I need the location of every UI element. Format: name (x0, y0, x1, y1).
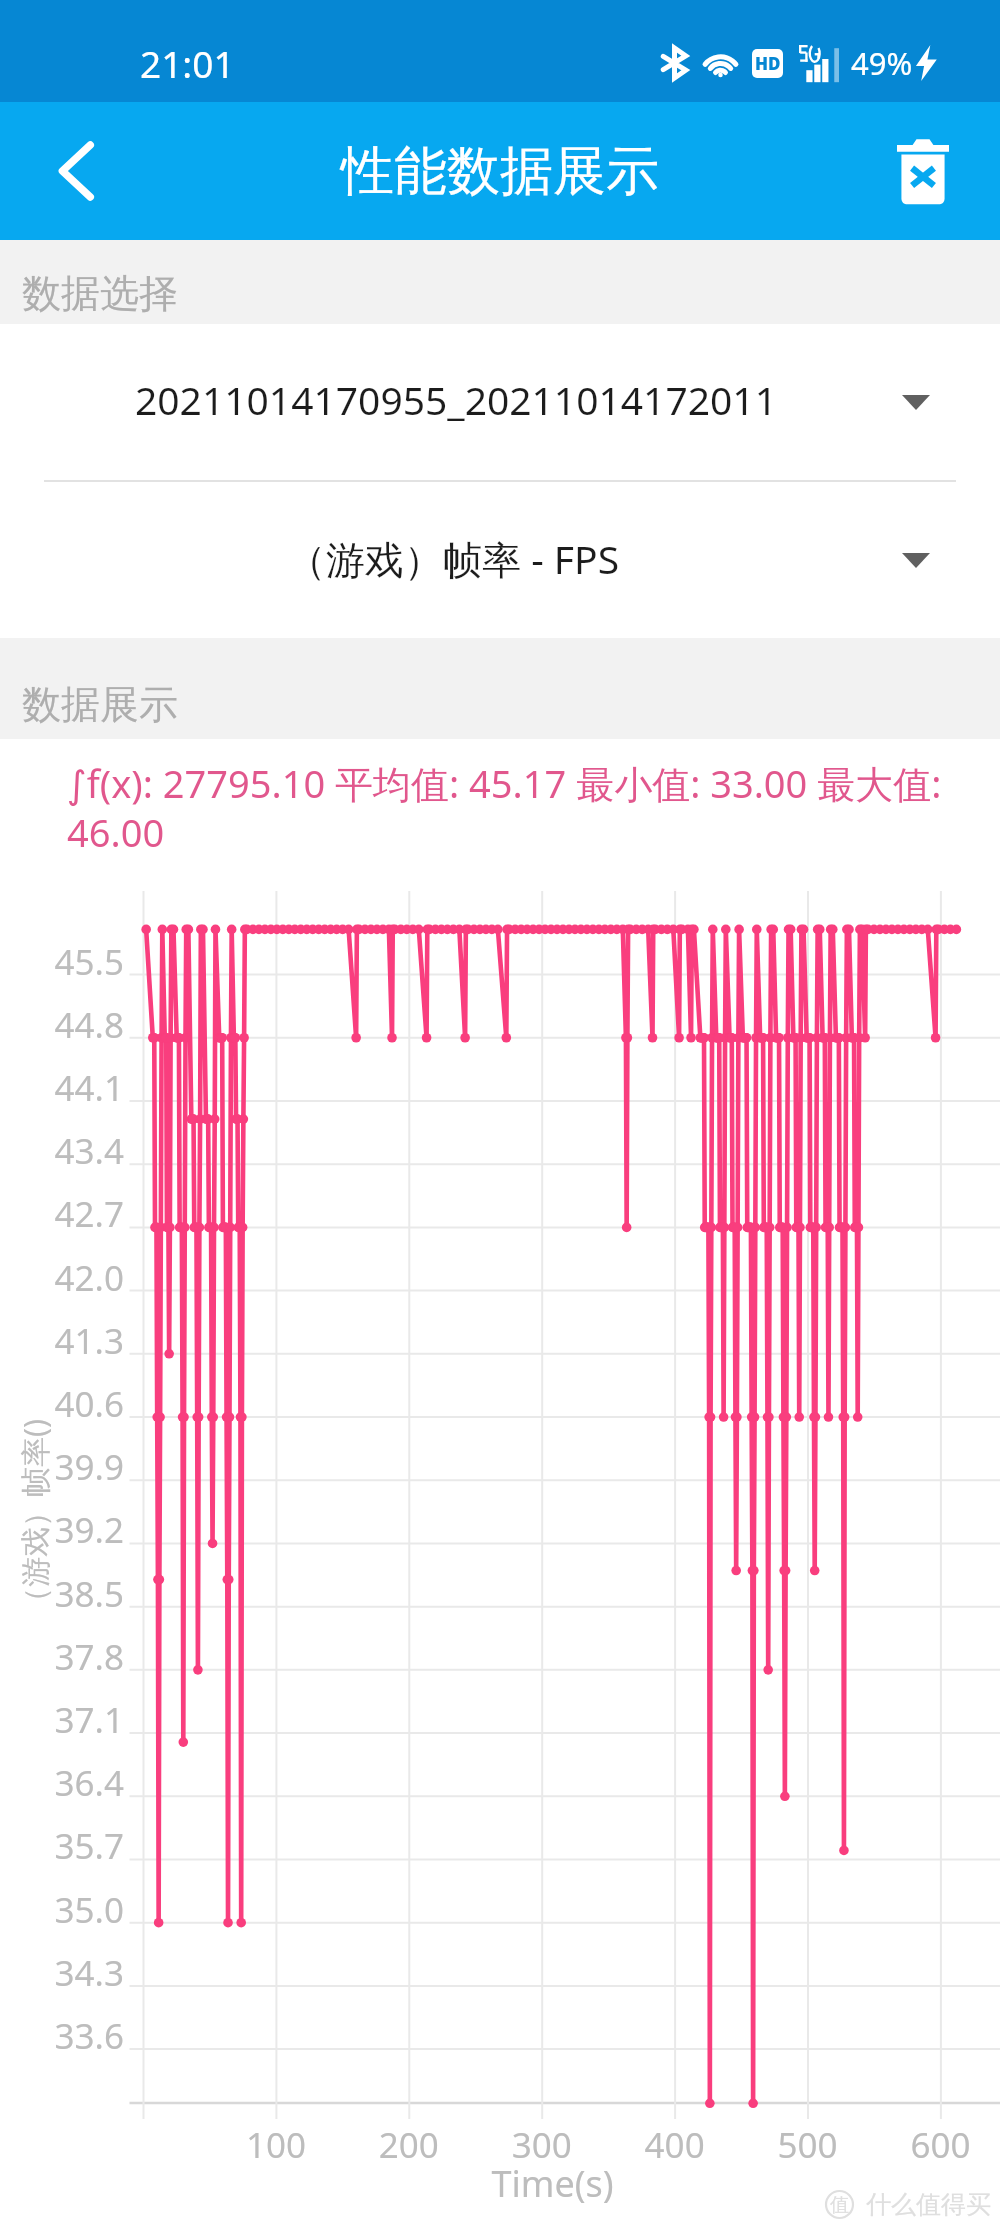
staticText: 21:01 (140, 38, 235, 88)
staticText: 值 (830, 2193, 849, 2217)
staticText: 20211014170955_20211014172011 (135, 373, 777, 426)
staticText: HD (755, 52, 781, 75)
button[interactable]: （游戏）帧率 - FPS (0, 482, 1000, 638)
staticText: ∫f(x): 27795.10 平均值: 45.17 最小值: 33.00 最大… (67, 757, 980, 858)
staticText: 数据选择 (22, 269, 178, 318)
staticText: 什么值得买 (866, 2189, 991, 2220)
staticText: 49% (851, 42, 913, 84)
button[interactable]: 20211014170955_20211014172011 (0, 324, 1000, 480)
staticText: 数据展示 (22, 680, 178, 729)
staticText: 性能数据展示 (341, 138, 659, 205)
button[interactable]: Back (40, 135, 112, 207)
button[interactable]: Delete (883, 131, 963, 211)
staticText: （游戏）帧率 - FPS (287, 532, 620, 585)
